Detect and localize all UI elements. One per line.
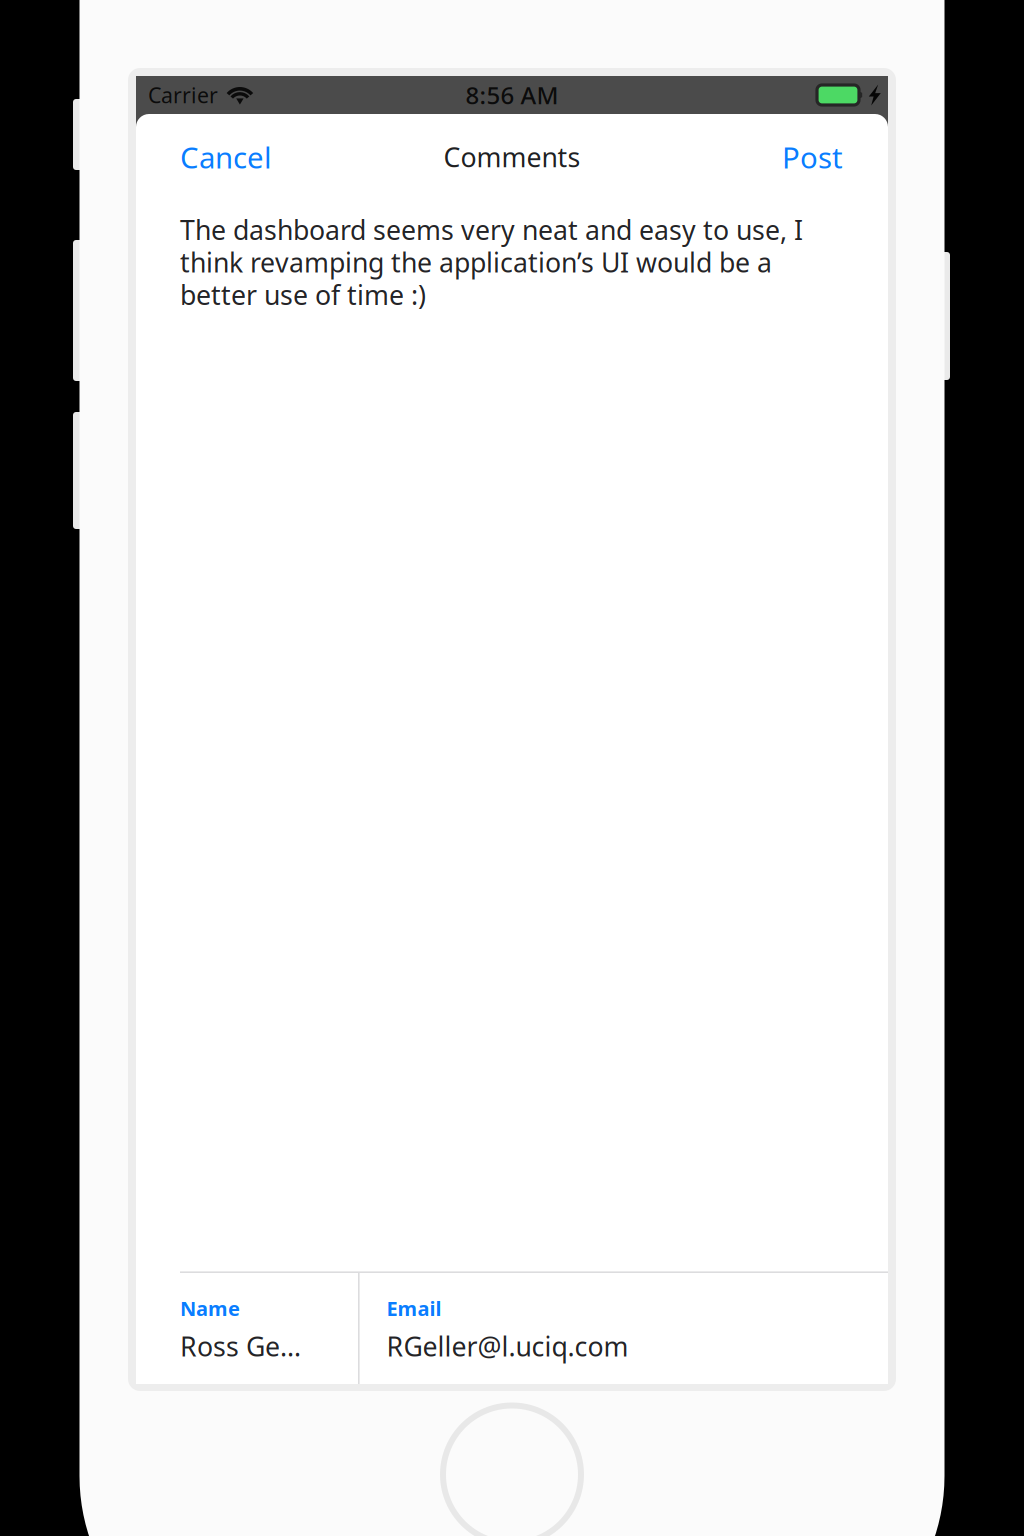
staticText: better use of time :) bbox=[180, 277, 426, 312]
staticText: Cancel bbox=[180, 137, 272, 176]
staticText: The dashboard seems very neat and easy t… bbox=[180, 212, 803, 247]
staticText: think revamping the application’s UI wou… bbox=[180, 244, 772, 280]
button[interactable]: Name bbox=[136, 1273, 358, 1384]
staticText: Ross Ge… bbox=[180, 1329, 301, 1364]
staticText: Carrier bbox=[148, 81, 218, 109]
button[interactable]: Cancel bbox=[136, 114, 290, 200]
staticText: Email bbox=[387, 1295, 442, 1322]
staticText: RGeller@l.uciq.com bbox=[387, 1329, 629, 1364]
button[interactable]: Post bbox=[764, 114, 888, 200]
staticText: 8:56 AM bbox=[465, 79, 558, 111]
button[interactable]: Email bbox=[360, 1273, 888, 1384]
staticText: Name bbox=[180, 1295, 240, 1322]
staticText: Post bbox=[782, 137, 843, 176]
staticText: Comments bbox=[443, 139, 580, 175]
